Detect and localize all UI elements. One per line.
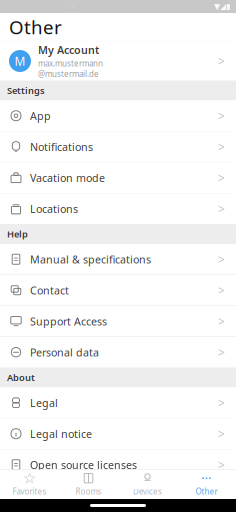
staticText: > [218,395,225,411]
staticText: max.mustermann@mustermail.de [38,58,103,79]
staticText: My Account [38,43,99,57]
staticText: > [218,457,225,473]
staticText: > [218,139,225,155]
staticText: Support Access [30,314,107,328]
staticText: Open source licenses [30,458,137,472]
button[interactable]: Legal notice [0,418,236,449]
button[interactable]: Locations [0,193,236,224]
button[interactable]: ☆ [0,470,59,499]
button[interactable]: Personal data [0,337,236,367]
staticText: Legal notice [30,427,92,441]
staticText: Notifications [30,140,93,154]
button[interactable]: Other [177,470,236,499]
staticText: Rooms [75,486,101,497]
staticText: > [218,426,225,442]
staticText: Settings [7,84,45,97]
staticText: Other [195,486,217,497]
staticText: Devices [133,486,162,497]
staticText: > [218,53,225,69]
staticText: Vacation mode [30,171,105,185]
staticText: App [30,109,51,123]
staticText: M [14,53,25,69]
staticText: > [218,282,225,298]
button[interactable]: App [0,100,236,131]
button[interactable]: Legal [0,387,236,418]
button[interactable]: M [0,41,236,80]
staticText: > [218,201,225,217]
staticText: Legal [30,396,58,410]
staticText: Favorites [12,486,46,497]
staticText: > [218,170,225,186]
staticText: ☆ [23,470,36,486]
button[interactable]: Contact [0,275,236,306]
button[interactable]: Devices [118,470,177,499]
staticText: Personal data [30,345,99,359]
staticText: Help [7,228,28,240]
staticText: About [7,371,35,384]
button[interactable]: Notifications [0,131,236,162]
staticText: > [218,313,225,329]
staticText: Locations [30,202,78,216]
staticText: > [218,344,225,360]
button[interactable]: Manual & specifications [0,244,236,275]
button[interactable]: Vacation mode [0,162,236,193]
button[interactable]: Rooms [59,470,118,499]
staticText: Other [9,15,62,39]
button[interactable]: Open source licenses [0,449,236,480]
staticText: ▼◢▮ [214,2,230,11]
button[interactable]: Support Access [0,306,236,337]
staticText: Manual & specifications [30,252,151,266]
staticText: > [218,251,225,267]
staticText: > [218,108,225,124]
staticText: Contact [30,283,69,297]
